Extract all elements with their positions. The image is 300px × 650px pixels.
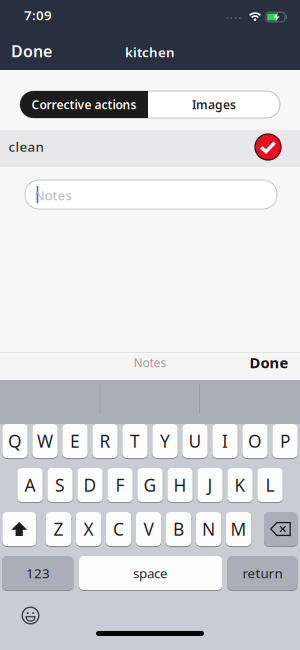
staticText: space — [133, 564, 168, 582]
staticText: K — [234, 473, 245, 496]
staticText: O — [248, 429, 262, 452]
staticText: return — [242, 564, 282, 582]
staticText: U — [188, 429, 201, 452]
button[interactable]: Y — [152, 424, 178, 458]
button[interactable]: M — [226, 512, 251, 546]
staticText: J — [207, 473, 212, 496]
button[interactable]: C — [106, 512, 131, 546]
button[interactable]: K — [227, 468, 253, 502]
staticText: Images — [192, 96, 236, 112]
button[interactable]: H — [167, 468, 193, 502]
button[interactable]: Z — [46, 512, 71, 546]
button[interactable]: F — [107, 468, 133, 502]
staticText: kitchen — [125, 43, 175, 61]
staticText: Done — [11, 40, 52, 62]
button[interactable]: W — [32, 424, 58, 458]
staticText: V — [143, 517, 153, 540]
staticText: R — [99, 429, 110, 452]
staticText: L — [265, 473, 274, 496]
button[interactable]: Delete — [264, 512, 298, 546]
staticText: 7:09 — [24, 6, 52, 24]
button[interactable]: X — [76, 512, 101, 546]
button[interactable]: B — [166, 512, 191, 546]
staticText: Notes — [133, 354, 166, 370]
staticText: clean — [8, 138, 43, 155]
staticText: A — [24, 473, 35, 496]
button[interactable]: A — [17, 468, 43, 502]
button[interactable]: O — [242, 424, 268, 458]
button[interactable]: Done — [11, 40, 52, 62]
button[interactable]: E — [62, 424, 88, 458]
button[interactable]: S — [47, 468, 73, 502]
staticText: T — [130, 429, 140, 452]
button[interactable]: U — [182, 424, 208, 458]
button[interactable]: Shift — [2, 512, 36, 546]
button[interactable]: Corrective actions — [20, 91, 148, 118]
staticText: X — [83, 517, 93, 540]
button[interactable]: Notes — [25, 180, 277, 209]
staticText: F — [115, 473, 124, 496]
staticText: Y — [160, 429, 170, 452]
staticText: Notes — [34, 186, 71, 204]
button[interactable]: return — [227, 556, 297, 590]
button[interactable]: space — [79, 556, 222, 590]
staticText: W — [37, 429, 53, 452]
staticText: S — [55, 473, 65, 496]
staticText: Z — [53, 517, 63, 540]
staticText: P — [280, 429, 290, 452]
staticText: H — [173, 473, 186, 496]
staticText: B — [173, 517, 184, 540]
staticText: Q — [8, 429, 22, 452]
button[interactable]: D — [77, 468, 103, 502]
button[interactable]: Done — [249, 353, 288, 372]
staticText: 123 — [26, 564, 50, 582]
button[interactable]: P — [272, 424, 298, 458]
button[interactable]: L — [257, 468, 283, 502]
button[interactable]: N — [196, 512, 221, 546]
button[interactable]: Q — [2, 424, 28, 458]
button[interactable]: V — [136, 512, 161, 546]
button[interactable]: 123 — [2, 556, 73, 590]
staticText: E — [70, 429, 80, 452]
staticText: M — [230, 517, 246, 540]
button[interactable]: T — [122, 424, 148, 458]
button[interactable]: G — [137, 468, 163, 502]
button[interactable]: I — [212, 424, 238, 458]
button[interactable]: R — [92, 424, 118, 458]
staticText: C — [113, 517, 124, 540]
button[interactable]: Images — [148, 91, 280, 118]
staticText: D — [83, 473, 96, 496]
staticText: Done — [249, 353, 288, 372]
button[interactable]: J — [197, 468, 223, 502]
button[interactable]: Completed — [255, 134, 281, 160]
staticText: G — [143, 473, 156, 496]
staticText: Corrective actions — [31, 96, 136, 112]
button[interactable]: Emoji — [21, 606, 39, 624]
staticText: I — [222, 429, 228, 452]
staticText: N — [202, 517, 215, 540]
